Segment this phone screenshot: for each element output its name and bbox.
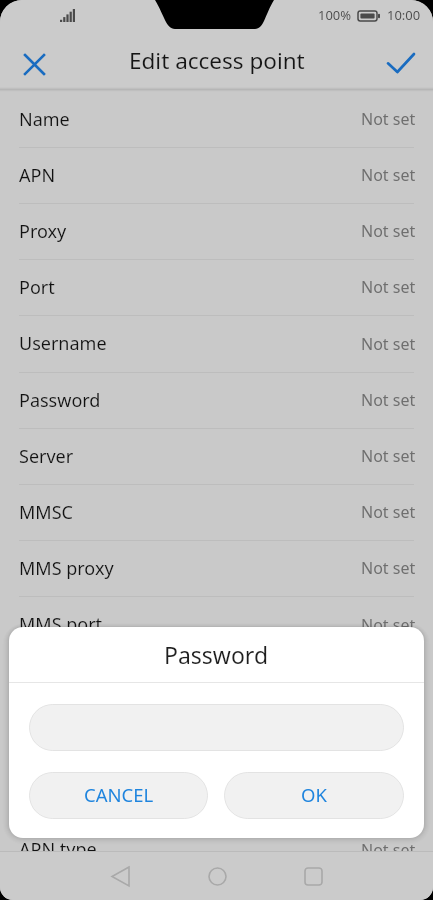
staticText: APN type <box>19 837 97 862</box>
button[interactable]: Authentication type <box>0 766 433 822</box>
staticText: Username <box>19 331 107 356</box>
staticText: Not set <box>361 276 416 298</box>
staticText: Password <box>19 388 101 413</box>
staticText: Not set <box>361 108 416 130</box>
button[interactable] <box>29 704 404 751</box>
button[interactable]: Port <box>0 260 433 316</box>
button[interactable]: Close <box>14 41 54 81</box>
staticText: Not set <box>361 389 416 411</box>
button[interactable]: Recents <box>289 852 337 900</box>
button[interactable]: MNC <box>0 710 433 766</box>
staticText: 10:00 <box>387 6 421 24</box>
staticText: MNC <box>19 725 61 750</box>
staticText: MMS proxy <box>19 556 114 581</box>
staticText: Proxy <box>19 219 67 244</box>
button[interactable]: APN <box>0 148 433 204</box>
staticText: Not set <box>361 557 416 579</box>
button[interactable]: OK <box>224 772 404 819</box>
staticText: Server <box>19 444 74 469</box>
staticText: Not set <box>361 782 416 804</box>
button[interactable]: Home <box>193 852 241 900</box>
staticText: Not set <box>361 839 416 861</box>
button[interactable]: MMSC <box>0 485 433 541</box>
staticText: Not set <box>361 726 416 748</box>
staticText: 100% <box>318 6 352 24</box>
staticText: Authentication type <box>19 781 186 806</box>
staticText: MMS port <box>19 612 103 637</box>
button[interactable]: CANCEL <box>29 772 208 819</box>
staticText: MMSC <box>19 500 73 525</box>
button[interactable]: Username <box>0 316 433 373</box>
staticText: MCC <box>19 669 58 694</box>
button[interactable]: APN type <box>0 822 433 879</box>
staticText: Port <box>19 275 55 300</box>
staticText: Not set <box>361 333 416 355</box>
button[interactable]: MMS proxy <box>0 541 433 597</box>
staticText: APN <box>19 163 56 188</box>
staticText: Not set <box>361 445 416 467</box>
staticText: Password <box>164 639 269 670</box>
staticText: Not set <box>361 670 416 692</box>
button[interactable]: Server <box>0 429 433 485</box>
button[interactable]: Proxy <box>0 204 433 260</box>
staticText: OK <box>301 782 327 807</box>
button[interactable]: Name <box>0 92 433 148</box>
button[interactable]: Password <box>0 373 433 429</box>
button[interactable]: Save <box>381 41 421 81</box>
staticText: Edit access point <box>129 45 305 76</box>
staticText: Not set <box>361 501 416 523</box>
button[interactable]: MMS port <box>0 597 433 654</box>
staticText: Not set <box>361 220 416 242</box>
staticText: CANCEL <box>84 782 154 807</box>
staticText: Name <box>19 107 70 132</box>
staticText: Not set <box>361 614 416 636</box>
button[interactable]: Back <box>96 852 144 900</box>
staticText: Not set <box>361 164 416 186</box>
button[interactable]: MCC <box>0 654 433 710</box>
